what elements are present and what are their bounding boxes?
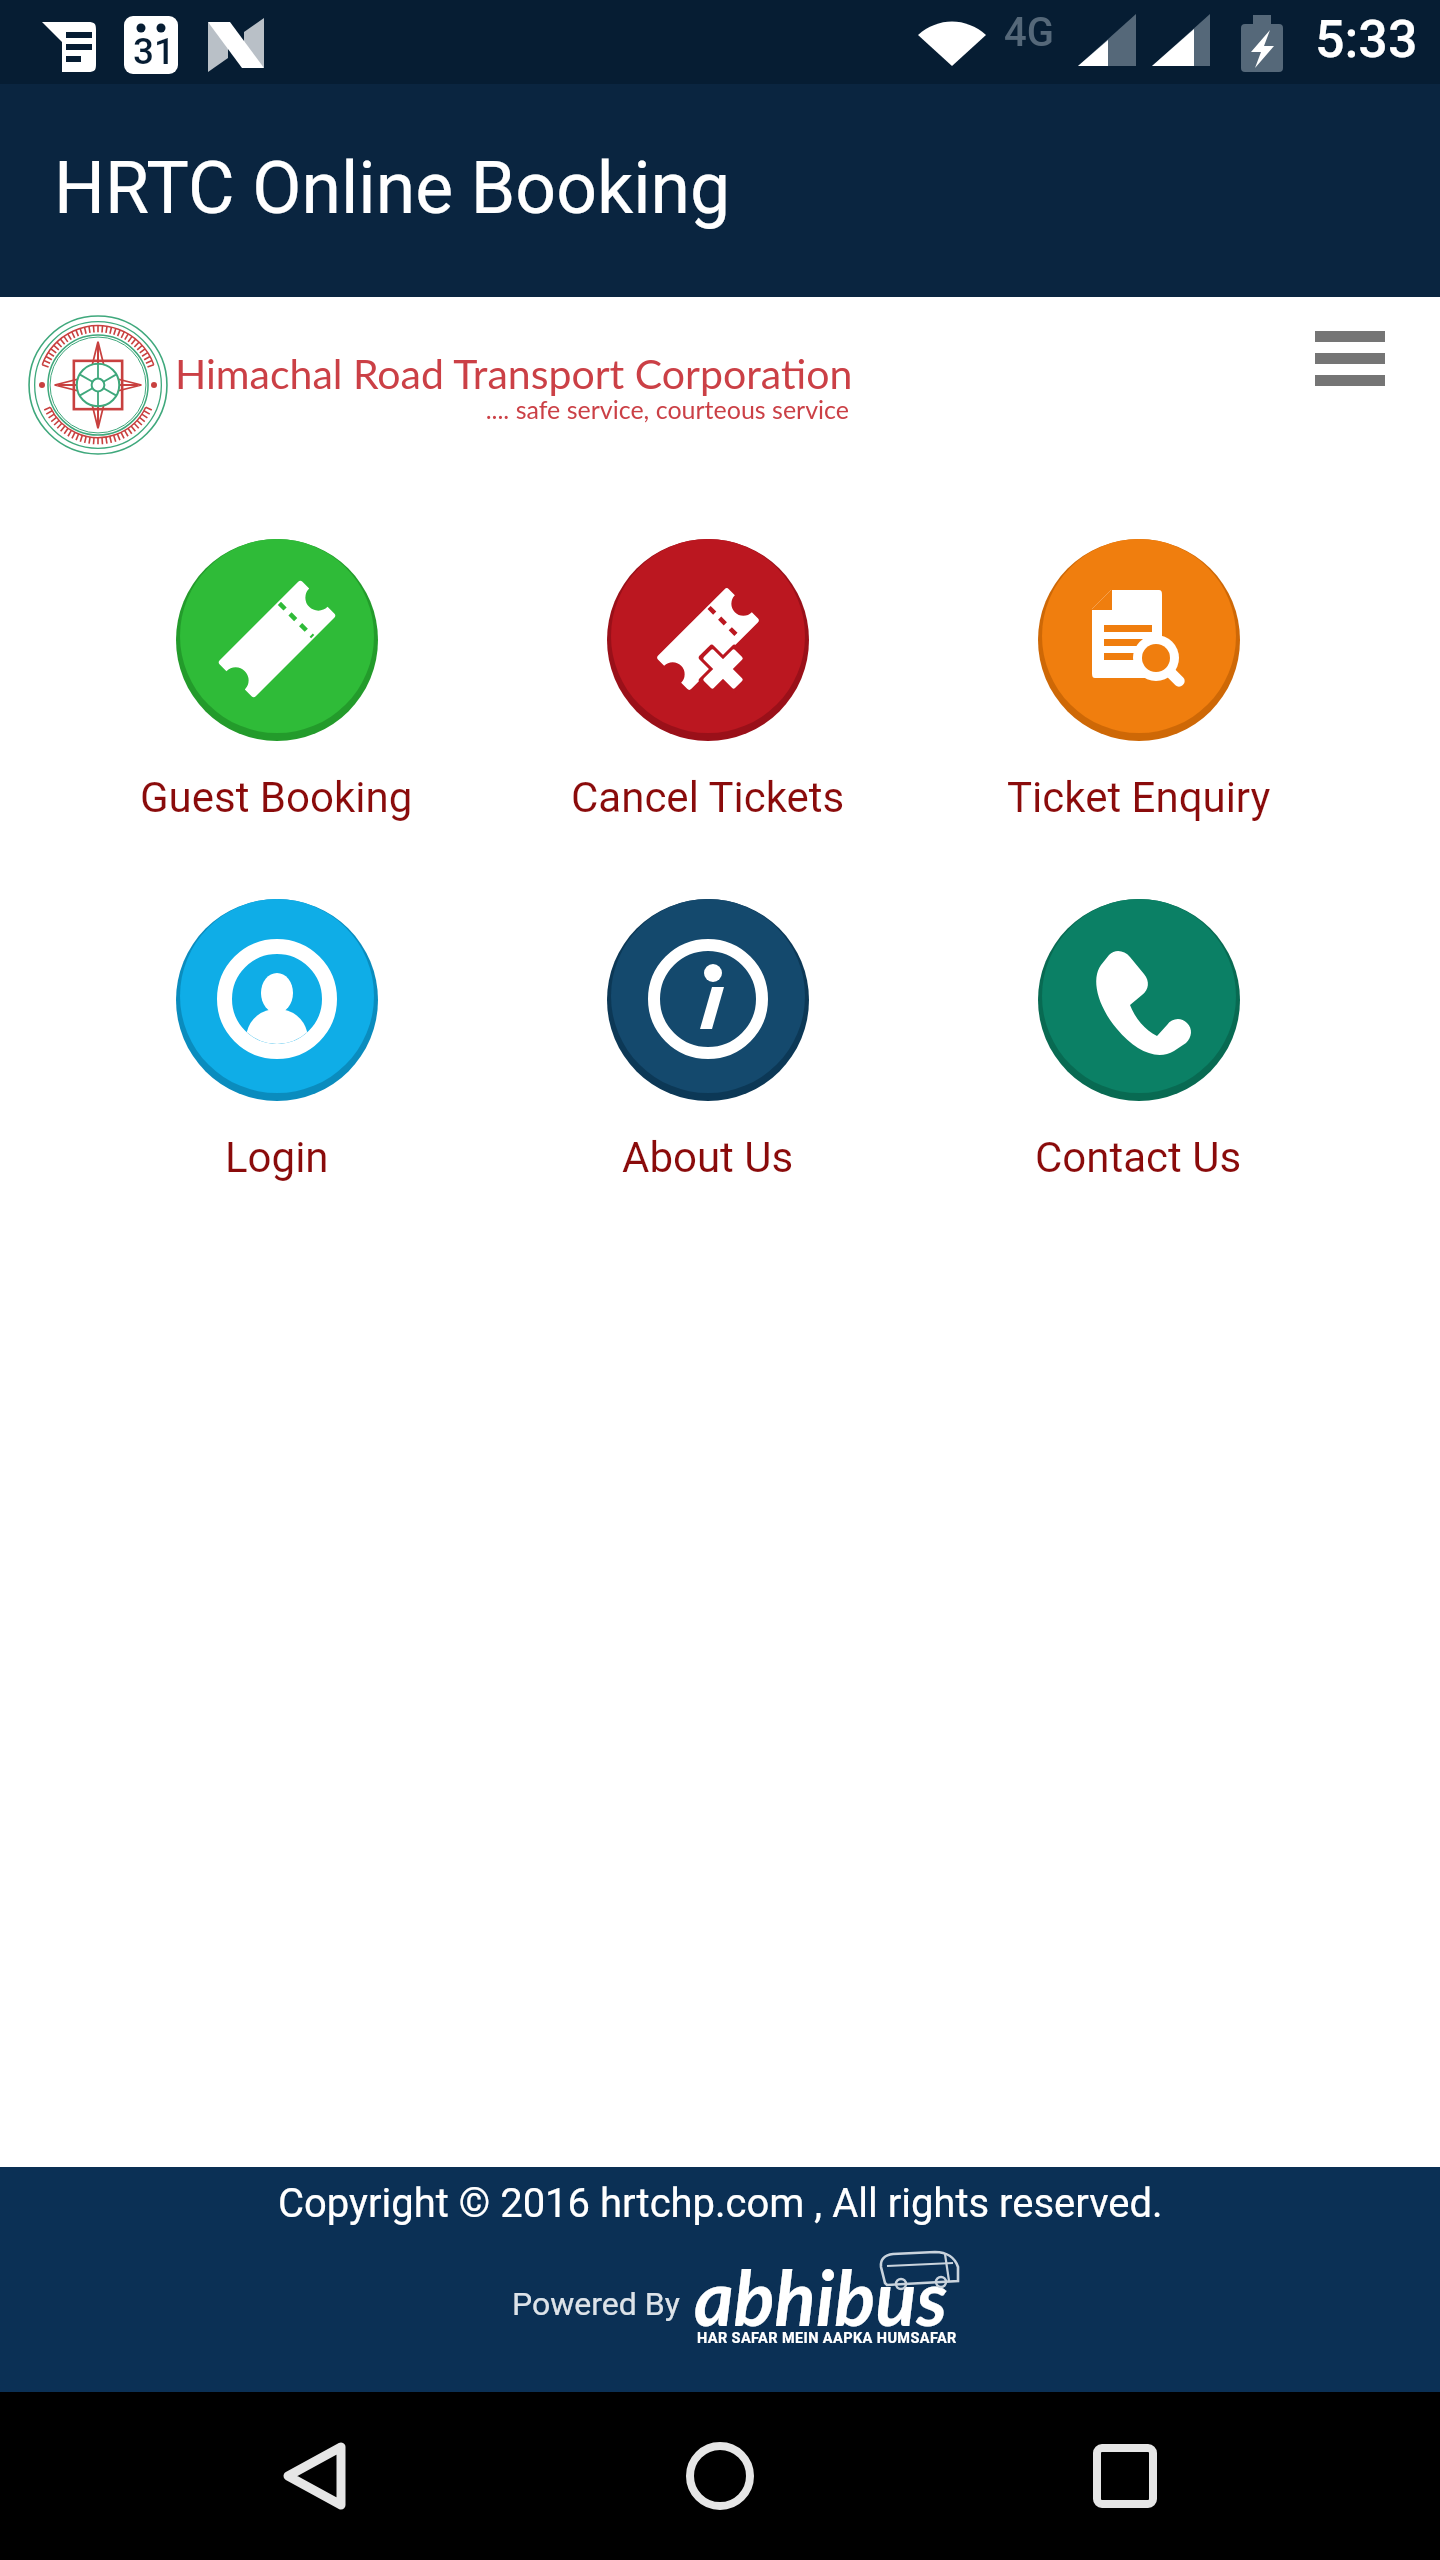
button[interactable]: Login (61, 899, 492, 1182)
staticText: 5:33 (1315, 9, 1418, 70)
staticText: Himachal Road Transport Corporation (175, 349, 853, 398)
staticText: abhibus (694, 2251, 948, 2342)
staticText: Ticket Enquiry (1007, 773, 1271, 822)
button[interactable]: Cancel Tickets (492, 539, 923, 822)
staticText: Guest Booking (140, 773, 413, 822)
staticText: Cancel Tickets (571, 773, 845, 822)
button[interactable]: Open navigation menu (1286, 297, 1414, 419)
button[interactable]: Back (113, 2392, 517, 2560)
button[interactable]: About Us (492, 899, 923, 1182)
button[interactable]: Guest Booking (61, 539, 492, 822)
button[interactable]: Home (517, 2392, 922, 2560)
button[interactable]: Ticket Enquiry (923, 539, 1354, 822)
staticText: 31 (133, 30, 176, 73)
staticText: Powered By (512, 2285, 680, 2323)
button[interactable]: Contact Us (923, 899, 1354, 1182)
staticText: Login (225, 1133, 329, 1182)
staticText: About Us (622, 1133, 794, 1182)
staticText: Contact Us (1035, 1133, 1242, 1182)
staticText: HAR SAFAR MEIN AAPKA HUMSAFAR (697, 2330, 957, 2347)
button[interactable]: Recent apps (922, 2392, 1327, 2560)
staticText: HRTC Online Booking (54, 147, 731, 231)
staticText: 4G (1004, 9, 1054, 56)
staticText: .... safe service, courteous service (175, 394, 849, 424)
staticText: Copyright © 2016 hrtchp.com , All rights… (278, 2180, 1163, 2227)
